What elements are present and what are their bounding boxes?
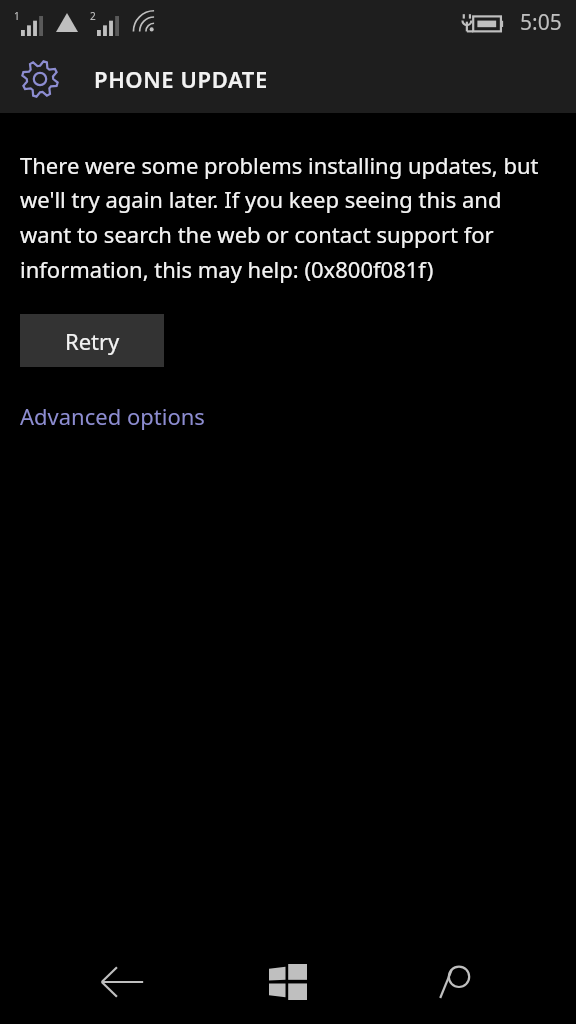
staticText: There were some problems installing upda… [20, 150, 550, 285]
staticText: 1 [14, 9, 20, 23]
button[interactable]: Start [243, 940, 333, 1024]
staticText: PHONE UPDATE [94, 64, 268, 94]
staticText: 5:05 [520, 8, 562, 37]
button[interactable]: Back [77, 940, 167, 1024]
button[interactable]: Advanced options [20, 399, 205, 433]
button[interactable]: Settings [18, 57, 62, 101]
staticText: Retry [65, 326, 120, 356]
staticText: 2 [90, 9, 96, 23]
button[interactable]: Retry [20, 314, 164, 367]
button[interactable]: Search [410, 940, 500, 1024]
staticText: Advanced options [20, 401, 205, 431]
